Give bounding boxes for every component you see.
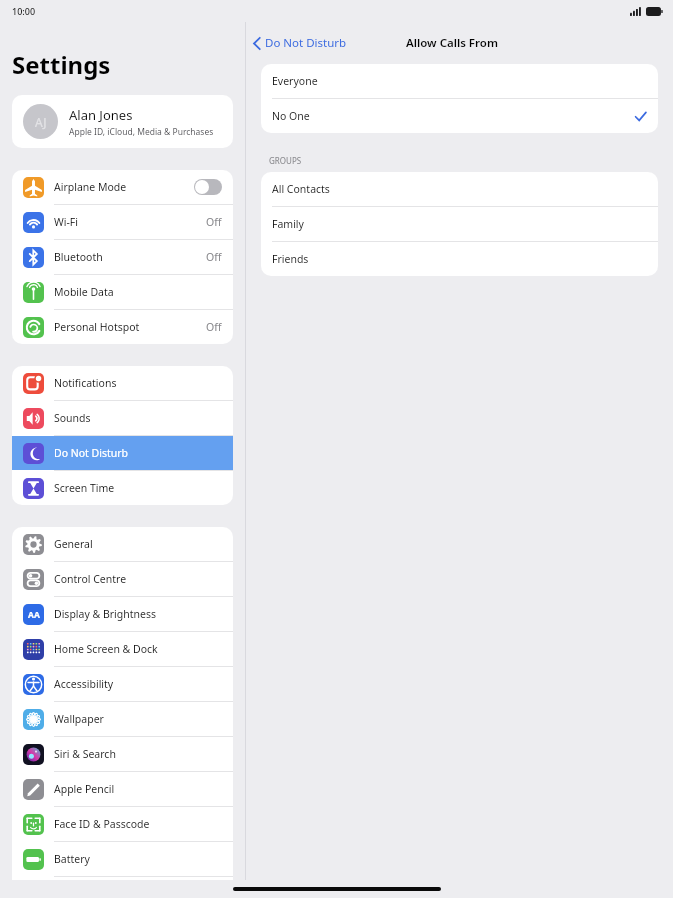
- button[interactable]: Bluetooth: [12, 240, 233, 274]
- button[interactable]: Everyone: [261, 64, 658, 98]
- staticText: Off: [206, 215, 222, 229]
- staticText: General: [54, 537, 222, 551]
- staticText: Notifications: [54, 376, 222, 390]
- button[interactable]: No One: [261, 99, 658, 133]
- staticText: Settings: [12, 48, 111, 81]
- staticText: Wallpaper: [54, 712, 222, 726]
- button[interactable]: Wallpaper: [12, 702, 233, 736]
- staticText: Off: [206, 250, 222, 264]
- button[interactable]: Personal Hotspot: [12, 310, 233, 344]
- button[interactable]: Airplane Mode toggle: [194, 179, 222, 195]
- button[interactable]: General: [12, 527, 233, 561]
- staticText: Everyone: [272, 74, 647, 88]
- staticText: Screen Time: [54, 481, 222, 495]
- staticText: Apple Pencil: [54, 782, 222, 796]
- button[interactable]: Do Not Disturb: [12, 436, 233, 470]
- staticText: Alan Jones: [69, 106, 133, 124]
- staticText: All Contacts: [272, 182, 647, 196]
- button[interactable]: All Contacts: [261, 172, 658, 206]
- staticText: Accessibility: [54, 677, 222, 691]
- staticText: AJ: [35, 114, 47, 130]
- button[interactable]: Apple Pencil: [12, 772, 233, 806]
- button[interactable]: Friends: [261, 242, 658, 276]
- button[interactable]: Home Screen & Dock: [12, 632, 233, 666]
- button[interactable]: Do Not Disturb: [246, 31, 355, 55]
- staticText: Allow Calls From: [406, 35, 498, 51]
- button[interactable]: Screen Time: [12, 471, 233, 505]
- staticText: No One: [272, 109, 634, 123]
- staticText: Airplane Mode: [54, 180, 194, 194]
- button[interactable]: Sounds: [12, 401, 233, 435]
- staticText: Face ID & Passcode: [54, 817, 222, 831]
- staticText: Off: [206, 320, 222, 334]
- staticText: Battery: [54, 852, 222, 866]
- staticText: Apple ID, iCloud, Media & Purchases: [69, 126, 214, 138]
- button[interactable]: Notifications: [12, 366, 233, 400]
- staticText: Siri & Search: [54, 747, 222, 761]
- staticText: 10:00: [12, 5, 36, 17]
- staticText: Wi-Fi: [54, 215, 206, 229]
- button[interactable]: Face ID & Passcode: [12, 807, 233, 841]
- button[interactable]: Family: [261, 207, 658, 241]
- staticText: Friends: [272, 252, 647, 266]
- button[interactable]: AA: [12, 597, 233, 631]
- button[interactable]: Accessibility: [12, 667, 233, 701]
- button[interactable]: Control Centre: [12, 562, 233, 596]
- staticText: Home Screen & Dock: [54, 642, 222, 656]
- staticText: Display & Brightness: [54, 607, 222, 621]
- button[interactable]: AJ: [12, 95, 233, 148]
- button[interactable]: Airplane Mode: [12, 170, 233, 204]
- staticText: Family: [272, 217, 647, 231]
- staticText: Sounds: [54, 411, 222, 425]
- staticText: Control Centre: [54, 572, 222, 586]
- staticText: Bluetooth: [54, 250, 206, 264]
- button[interactable]: Mobile Data: [12, 275, 233, 309]
- staticText: GROUPS: [269, 155, 302, 166]
- staticText: Do Not Disturb: [265, 35, 347, 51]
- staticText: Do Not Disturb: [54, 446, 222, 460]
- button[interactable]: Wi-Fi: [12, 205, 233, 239]
- button[interactable]: Siri & Search: [12, 737, 233, 771]
- button[interactable]: Battery: [12, 842, 233, 876]
- staticText: Mobile Data: [54, 285, 222, 299]
- staticText: AA: [28, 609, 40, 621]
- staticText: Personal Hotspot: [54, 320, 206, 334]
